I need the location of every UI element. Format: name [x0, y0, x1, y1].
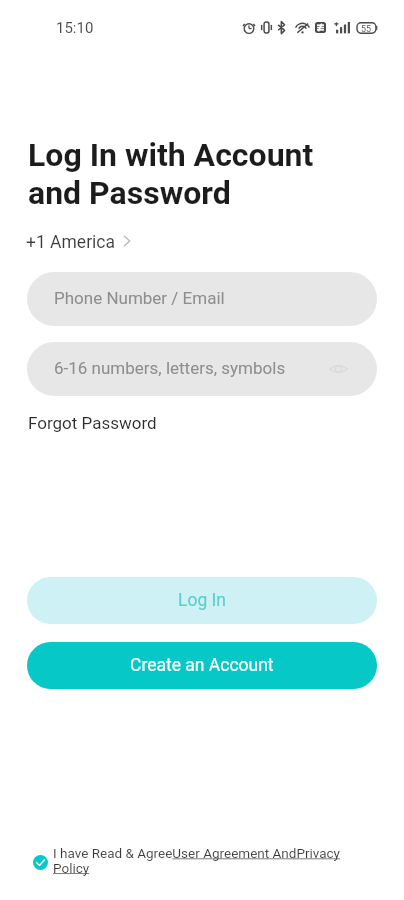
button[interactable]: Show password	[329, 362, 348, 376]
staticText: Log In	[178, 590, 226, 611]
button[interactable]: I agree to the terms	[33, 855, 48, 870]
button[interactable]: Forgot Password	[28, 411, 157, 435]
staticText: Log In with Account and Password	[28, 136, 314, 212]
button[interactable]: 6-16 numbers, letters, symbols	[27, 342, 377, 396]
staticText: 6-16 numbers, letters, symbols	[54, 358, 286, 378]
staticText: Create an Account	[130, 655, 274, 676]
button[interactable]: Select country code	[26, 232, 137, 253]
button[interactable]: Log In	[27, 577, 377, 624]
button[interactable]: I have Read & AgreeUser Agreement AndPri…	[53, 845, 350, 876]
button[interactable]: Phone Number / Email	[27, 272, 377, 326]
button[interactable]: Create an Account	[27, 642, 377, 689]
staticText: 55	[361, 24, 372, 35]
staticText: +1 America	[26, 232, 116, 253]
staticText: 15:10	[56, 19, 94, 37]
staticText: Phone Number / Email	[54, 288, 225, 308]
